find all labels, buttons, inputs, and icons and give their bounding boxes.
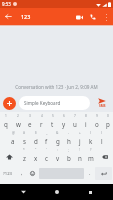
button[interactable]: Enter xyxy=(95,167,112,180)
button[interactable]: More options xyxy=(100,10,113,24)
staticText: & xyxy=(56,131,59,135)
staticText: g xyxy=(56,137,60,145)
button[interactable]: + xyxy=(74,131,85,148)
staticText: + xyxy=(79,131,81,135)
button[interactable]: : xyxy=(52,148,63,165)
staticText: ?123 xyxy=(3,171,13,177)
button[interactable]: 0 xyxy=(102,114,113,131)
button[interactable]: 9 xyxy=(91,114,102,131)
button[interactable]: Emoji xyxy=(27,165,38,182)
button[interactable]: _ xyxy=(41,131,52,148)
button[interactable]: ; xyxy=(63,148,74,165)
staticText: - xyxy=(68,131,70,135)
staticText: h xyxy=(67,137,71,145)
button[interactable]: 3 xyxy=(24,114,36,131)
staticText: SMS xyxy=(99,104,106,108)
button[interactable]: ' xyxy=(41,148,52,165)
staticText: n xyxy=(78,154,82,162)
staticText: m xyxy=(88,154,94,162)
staticText: $ xyxy=(35,131,37,135)
button[interactable]: $ xyxy=(30,131,41,148)
staticText: x xyxy=(34,154,38,162)
button[interactable]: @ xyxy=(7,131,19,148)
button[interactable]: - xyxy=(63,131,74,148)
staticText: b xyxy=(67,154,71,162)
button[interactable]: , xyxy=(16,165,27,182)
button[interactable]: * xyxy=(18,148,30,165)
button[interactable]: Add attachment xyxy=(3,97,16,110)
staticText: i xyxy=(85,120,87,128)
button[interactable]: 6 xyxy=(58,114,69,131)
staticText: 5 xyxy=(52,114,54,118)
button[interactable]: Back xyxy=(0,8,17,25)
button[interactable]: 8 xyxy=(80,114,91,131)
staticText: d xyxy=(34,137,38,145)
staticText: r xyxy=(40,120,43,128)
staticText: q xyxy=(4,120,8,128)
button[interactable]: Home xyxy=(47,184,67,200)
button[interactable]: & xyxy=(52,131,63,148)
staticText: 7 xyxy=(74,114,76,118)
staticText: . xyxy=(89,169,91,176)
staticText: v xyxy=(56,154,60,162)
staticText: Simple Keyboard xyxy=(24,100,61,106)
button[interactable]: Video call xyxy=(72,10,86,24)
button[interactable]: . xyxy=(85,165,94,182)
button[interactable]: Send SMS xyxy=(90,94,113,112)
staticText: z xyxy=(23,154,26,162)
staticText: # xyxy=(23,131,26,135)
staticText: u xyxy=(73,120,77,128)
staticText: y xyxy=(62,120,66,128)
button[interactable]: 4 xyxy=(36,114,47,131)
staticText: 9 xyxy=(96,114,98,118)
staticText: 2 xyxy=(17,114,19,118)
button[interactable]: Simple Keyboard xyxy=(19,96,90,110)
button[interactable]: ? xyxy=(85,148,96,165)
staticText: 4 xyxy=(41,114,43,118)
staticText: 9:53 xyxy=(2,1,11,7)
staticText: t xyxy=(51,120,54,128)
staticText: s xyxy=(23,137,26,145)
button[interactable]: Shift xyxy=(0,148,18,165)
staticText: Conversation with 123 · Jun 2, 9:09 AM xyxy=(15,84,98,90)
staticText: @ xyxy=(12,131,15,135)
button[interactable]: " xyxy=(30,148,41,165)
staticText: ) xyxy=(101,131,102,135)
staticText: 8 xyxy=(85,114,87,118)
button[interactable]: 7 xyxy=(69,114,80,131)
button[interactable]: ) xyxy=(96,131,107,148)
staticText: 3 xyxy=(29,114,31,118)
button[interactable]: Recent apps xyxy=(80,184,100,200)
button[interactable]: 2 xyxy=(12,114,24,131)
staticText: 0 xyxy=(107,114,109,118)
staticText: k xyxy=(89,137,93,145)
button[interactable]: ?123 xyxy=(0,165,16,182)
button[interactable]: Call xyxy=(86,10,100,24)
button[interactable]: 5 xyxy=(47,114,58,131)
staticText: p xyxy=(106,120,110,128)
staticText: _ xyxy=(46,131,48,135)
staticText: ( xyxy=(90,131,91,135)
button[interactable]: ( xyxy=(85,131,96,148)
staticText: ? xyxy=(90,148,92,152)
staticText: e xyxy=(28,120,32,128)
staticText: 123 xyxy=(21,13,31,20)
button[interactable]: ! xyxy=(74,148,85,165)
staticText: 1 xyxy=(5,114,7,118)
staticText: 6 xyxy=(63,114,65,118)
staticText: a xyxy=(11,137,15,145)
staticText: ' xyxy=(46,148,47,152)
staticText: o xyxy=(95,120,99,128)
staticText: c xyxy=(45,154,48,162)
button[interactable]: Back xyxy=(13,184,33,200)
staticText: * xyxy=(23,148,25,152)
button[interactable]: 1 xyxy=(0,114,12,131)
staticText: ; xyxy=(68,148,69,152)
staticText: f xyxy=(45,137,48,145)
button[interactable]: # xyxy=(19,131,30,148)
staticText: l xyxy=(101,137,103,145)
staticText: w xyxy=(16,120,21,128)
button[interactable]: Backspace xyxy=(96,148,113,165)
staticText: ! xyxy=(79,148,80,152)
